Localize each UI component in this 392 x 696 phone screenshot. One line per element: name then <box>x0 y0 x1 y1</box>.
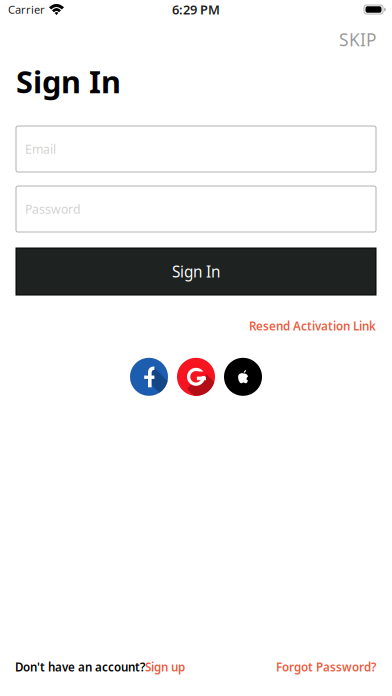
button[interactable]: Forgot Password? <box>276 659 376 675</box>
staticText: Sign In <box>172 261 220 282</box>
button[interactable]: Sign In <box>16 248 376 295</box>
button[interactable]: Sign in with Google <box>177 358 215 396</box>
button[interactable]: Sign up <box>145 659 185 675</box>
staticText: Email <box>25 141 56 157</box>
button[interactable]: Password <box>16 186 376 232</box>
button[interactable]: Sign in with Facebook <box>130 358 168 396</box>
staticText: Carrier <box>8 2 45 17</box>
staticText: Password <box>25 201 81 217</box>
staticText: Sign up <box>145 659 185 675</box>
staticText: 6:29 PM <box>172 1 220 18</box>
button[interactable]: Resend Activation Link <box>249 318 376 334</box>
staticText: Resend Activation Link <box>249 318 376 334</box>
staticText: Don't have an account? <box>15 659 145 675</box>
button[interactable]: Email <box>16 126 376 172</box>
button[interactable]: Sign in with Apple <box>224 358 262 396</box>
staticText: Forgot Password? <box>276 659 376 675</box>
button[interactable]: SKIP <box>323 19 392 56</box>
staticText: SKIP <box>339 28 376 51</box>
staticText: Sign In <box>16 61 121 102</box>
